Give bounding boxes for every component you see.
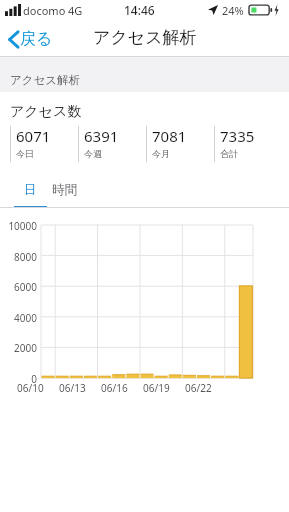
staticText: 今日 — [16, 148, 34, 159]
staticText: 日 — [24, 182, 37, 198]
staticText: 06/10 — [17, 381, 44, 395]
staticText: 合計 — [220, 148, 238, 159]
staticText: アクセス解析 — [93, 27, 197, 48]
staticText: 6391 — [84, 126, 119, 146]
staticText: 4000 — [14, 311, 37, 325]
staticText: 戻る — [20, 29, 53, 49]
staticText: 4G — [68, 3, 83, 18]
staticText: 06/13 — [59, 381, 86, 395]
staticText: 6071 — [16, 126, 51, 146]
staticText: 7081 — [152, 126, 187, 146]
button[interactable]: 7335 — [214, 126, 282, 162]
staticText: 06/22 — [185, 381, 212, 395]
staticText: 0 — [31, 372, 37, 386]
staticText: 時間 — [52, 182, 77, 198]
staticText: 24% — [222, 3, 244, 18]
staticText: 6000 — [14, 280, 37, 294]
staticText: アクセス数 — [10, 103, 82, 121]
staticText: 10000 — [8, 219, 37, 233]
button[interactable]: 6391 — [78, 126, 146, 162]
staticText: アクセス解析 — [10, 73, 81, 87]
staticText: 今月 — [152, 148, 170, 159]
staticText: 14:46 — [124, 2, 155, 18]
button[interactable]: 7081 — [146, 126, 214, 162]
button[interactable]: 日 — [14, 182, 47, 208]
staticText: 06/19 — [143, 381, 170, 395]
button[interactable]: 6071 — [10, 126, 78, 162]
staticText: 06/16 — [101, 381, 128, 395]
button[interactable]: Back — [0, 23, 65, 55]
staticText: docomo — [23, 3, 66, 18]
staticText: 7335 — [220, 126, 255, 146]
staticText: 8000 — [14, 250, 37, 264]
staticText: 2000 — [14, 341, 37, 355]
button[interactable]: 時間 — [47, 182, 81, 208]
staticText: 今週 — [84, 148, 102, 159]
